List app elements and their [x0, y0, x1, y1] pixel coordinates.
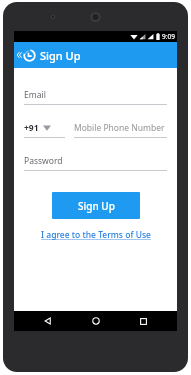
staticText: Sign Up: [40, 48, 81, 63]
staticText: 9:09: [162, 32, 175, 41]
button[interactable]: Sign Up: [52, 192, 140, 219]
button[interactable]: Back: [35, 311, 61, 331]
staticText: Email: [24, 89, 46, 101]
staticText: Password: [24, 155, 63, 167]
button[interactable]: Password: [24, 155, 167, 171]
staticText: Sign Up: [78, 199, 115, 213]
staticText: +91: [24, 122, 39, 134]
button[interactable]: Mobile Phone Number: [74, 122, 167, 138]
button[interactable]: I agree to the Terms of Use: [39, 228, 153, 242]
button[interactable]: Home: [83, 311, 109, 331]
button[interactable]: Email: [24, 89, 167, 105]
staticText: I agree to the Terms of Use: [41, 229, 151, 241]
button[interactable]: Recent apps: [130, 311, 156, 331]
button[interactable]: +91: [24, 122, 65, 138]
button[interactable]: Back: [16, 42, 36, 68]
staticText: Mobile Phone Number: [74, 122, 165, 134]
